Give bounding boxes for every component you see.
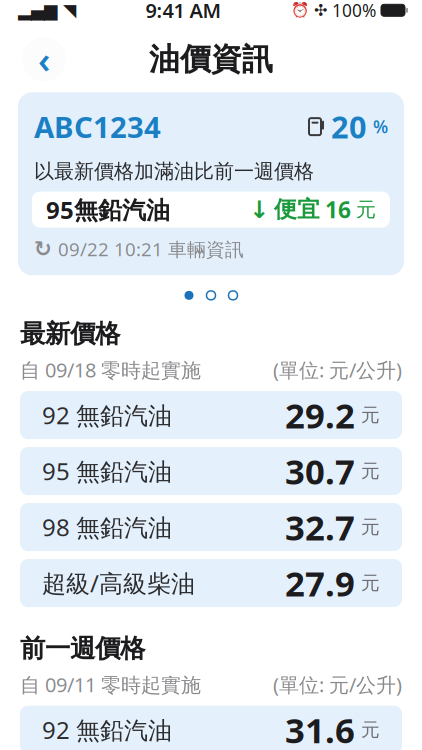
staticText: % [373,115,388,138]
button[interactable]: 92 無鉛汽油 [20,391,402,439]
staticText: 100% [332,0,376,22]
staticText: ▂▄▆ [18,0,57,20]
staticText: 29.2 [285,392,355,438]
staticText: 自 09/11 零時起實施 [20,671,201,698]
staticText: ✣ [314,1,327,19]
staticText: 自 09/18 零時起實施 [20,356,201,383]
staticText: 95無鉛汽油 [46,194,170,225]
staticText: 以最新價格加滿油比前一週價格 [34,159,314,184]
button[interactable]: 98 無鉛汽油 [20,503,402,551]
staticText: ◥ [63,0,76,20]
staticText: ‹ [38,35,50,83]
staticText: 元 [356,197,376,222]
staticText: 92 無鉛汽油 [42,714,172,746]
button[interactable]: 95 無鉛汽油 [20,447,402,495]
staticText: 前一週價格 [20,633,145,664]
button[interactable]: 超級/高級柴油 [20,559,402,607]
staticText: 9:41 AM [145,0,221,24]
staticText: ⏰ [291,2,309,19]
staticText: 92 無鉛汽油 [42,399,172,431]
staticText: 09/22 10:21 車輛資訊 [58,237,244,261]
staticText: 98 無鉛汽油 [42,511,172,543]
staticText: 30.7 [285,448,355,494]
button[interactable]: 92 無鉛汽油 [20,706,402,750]
staticText: 元 [361,718,380,741]
staticText: ↓ [249,196,269,223]
staticText: 油價資訊 [149,40,273,78]
staticText: 31.6 [285,707,355,750]
staticText: 元 [361,516,380,538]
staticText: 超級/高級柴油 [42,567,195,599]
staticText: 元 [361,404,380,426]
staticText: 元 [361,572,380,594]
staticText: (單位: 元/公升) [273,671,402,698]
staticText: 32.7 [285,504,355,550]
staticText: ABC1234 [34,107,161,146]
button[interactable]: Back [22,37,66,81]
staticText: 便宜 [274,196,320,223]
staticText: 16 [325,194,351,225]
staticText: 20 [331,106,367,147]
staticText: ↻ [34,237,52,261]
staticText: 95 無鉛汽油 [42,455,172,487]
staticText: (單位: 元/公升) [273,356,402,383]
staticText: 最新價格 [20,318,120,349]
staticText: 27.9 [285,560,355,606]
staticText: 元 [361,460,380,482]
